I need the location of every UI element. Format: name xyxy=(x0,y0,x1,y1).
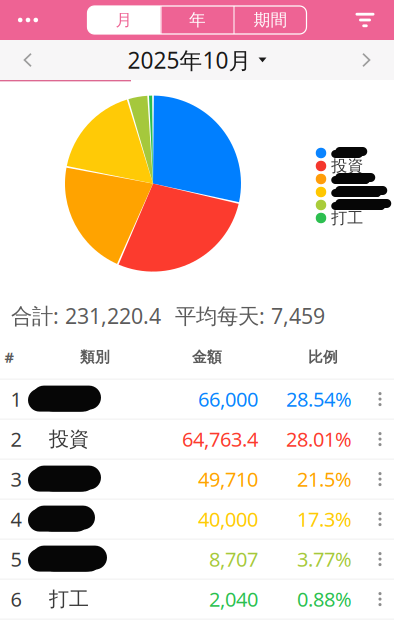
staticText: 17.3% xyxy=(297,505,352,533)
staticText: 年 xyxy=(189,9,206,30)
staticText: 投資 xyxy=(331,156,363,176)
button[interactable]: 月 xyxy=(87,6,160,34)
button[interactable]: 4 xyxy=(0,500,394,539)
staticText: 期間 xyxy=(253,9,287,30)
button[interactable]: Previous period xyxy=(0,40,56,80)
button[interactable]: Filter xyxy=(336,0,394,40)
staticText: 2,040 xyxy=(209,585,258,613)
staticText: 4 xyxy=(10,505,21,533)
staticText: 28.01% xyxy=(286,425,352,453)
staticText: 1 xyxy=(10,385,21,413)
staticText: 類別 xyxy=(80,348,110,366)
staticText: 8,707 xyxy=(209,545,258,573)
staticText: 比例 xyxy=(308,348,338,366)
staticText: 21.5% xyxy=(297,465,352,493)
staticText: 3.77% xyxy=(297,545,352,573)
staticText: 投資 xyxy=(49,426,89,452)
button[interactable]: 年 xyxy=(161,6,233,34)
button[interactable]: Next period xyxy=(338,40,394,80)
staticText: 66,000 xyxy=(198,385,258,413)
staticText: 5 xyxy=(10,545,21,573)
button[interactable]: 期間 xyxy=(234,6,306,34)
button[interactable]: 1 xyxy=(0,380,394,419)
button[interactable]: 2 xyxy=(0,420,394,459)
button[interactable]: 5 xyxy=(0,540,394,579)
button[interactable]: 6 xyxy=(0,580,394,619)
button[interactable]: 3 xyxy=(0,460,394,499)
button[interactable]: 2025年10月 xyxy=(127,40,266,80)
staticText: 28.54% xyxy=(286,385,352,413)
staticText: 49,710 xyxy=(198,465,258,493)
staticText: 6 xyxy=(10,585,21,613)
staticText: 3 xyxy=(10,465,21,493)
button[interactable]: More options xyxy=(0,0,56,40)
staticText: 64,763.4 xyxy=(182,425,258,453)
staticText: 打工 xyxy=(331,208,363,228)
staticText: 40,000 xyxy=(198,505,258,533)
staticText: 0.88% xyxy=(297,585,352,613)
staticText: 2 xyxy=(10,425,21,453)
staticText: # xyxy=(4,347,13,367)
staticText: 2025年10月 xyxy=(127,45,251,75)
staticText: 月 xyxy=(115,9,132,30)
staticText: 合計: 231,220.4 xyxy=(11,301,161,330)
staticText: 平均每天: 7,459 xyxy=(175,301,325,330)
staticText: 打工 xyxy=(49,586,89,612)
staticText: 金額 xyxy=(192,348,222,366)
